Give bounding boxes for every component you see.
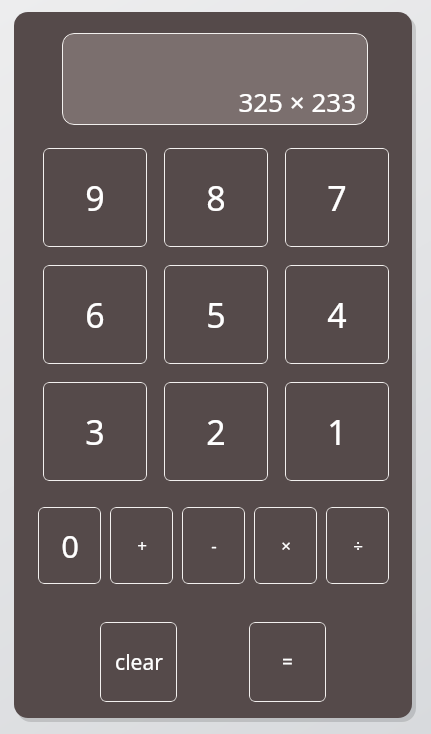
staticText: 9 [85,175,105,221]
staticText: ÷ [353,534,363,557]
button[interactable]: 0 [38,507,101,584]
button[interactable]: clear [100,622,177,702]
button[interactable]: Equals [249,622,326,702]
staticText: 5 [206,292,226,338]
button[interactable]: 3 [43,382,147,481]
button[interactable]: Minus [182,507,245,584]
button[interactable]: Divide [326,507,389,584]
staticText: 4 [327,292,347,338]
staticText: 1 [327,409,347,455]
staticText: 3 [85,409,105,455]
button[interactable]: 1 [285,382,389,481]
button[interactable]: 5 [164,265,268,364]
staticText: + [137,534,147,557]
button[interactable]: 9 [43,148,147,247]
button[interactable]: 325 × 233 [62,33,368,125]
staticText: 6 [85,292,105,338]
button[interactable]: 2 [164,382,268,481]
button[interactable]: Plus [110,507,173,584]
button[interactable]: Multiply [254,507,317,584]
staticText: 2 [206,409,226,455]
staticText: clear [115,648,163,677]
button[interactable]: 6 [43,265,147,364]
staticText: 8 [206,175,226,221]
staticText: - [211,534,217,557]
staticText: 0 [61,525,79,567]
staticText: 7 [327,175,347,221]
staticText: = [282,649,293,675]
staticText: 325 × 233 [238,84,356,119]
button[interactable]: 8 [164,148,268,247]
staticText: × [281,534,291,557]
button[interactable]: 7 [285,148,389,247]
button[interactable]: 4 [285,265,389,364]
